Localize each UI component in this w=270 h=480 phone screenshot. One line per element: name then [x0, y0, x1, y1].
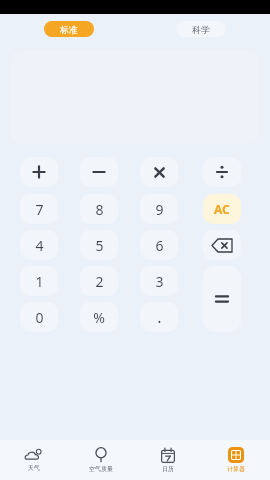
button[interactable]: 8 — [80, 194, 118, 224]
staticText: 空气质量 — [89, 465, 113, 473]
staticText: 0 — [35, 308, 44, 327]
staticText: 日历 — [162, 465, 174, 473]
staticText: 9 — [155, 200, 164, 219]
button[interactable]: × — [140, 157, 178, 187]
staticText: 标准 — [60, 24, 78, 35]
button[interactable]: Equals — [203, 266, 241, 332]
staticText: 2 — [95, 272, 104, 291]
button[interactable]: + — [20, 157, 58, 187]
button[interactable]: . — [140, 302, 178, 332]
button[interactable]: 日历 — [134, 440, 202, 480]
button[interactable]: 空气质量 — [67, 440, 134, 480]
staticText: AC — [214, 201, 230, 217]
staticText: 8 — [95, 200, 104, 219]
staticText: 4 — [35, 236, 44, 255]
button[interactable]: 9 — [140, 194, 178, 224]
button[interactable]: Backspace — [203, 230, 241, 260]
staticText: 5 — [95, 236, 104, 255]
button[interactable]: 计算器 — [202, 440, 270, 480]
staticText: 7 — [35, 200, 44, 219]
staticText: . — [157, 306, 162, 328]
button[interactable]: − — [80, 157, 118, 187]
staticText: 天气 — [28, 464, 40, 472]
button[interactable]: 5 — [80, 230, 118, 260]
staticText: 科学 — [192, 24, 210, 35]
button[interactable]: 1 — [20, 266, 58, 296]
button[interactable]: 科学 — [176, 21, 226, 37]
button[interactable]: 6 — [140, 230, 178, 260]
button[interactable]: 0 — [20, 302, 58, 332]
staticText: 6 — [155, 236, 164, 255]
staticText: % — [93, 308, 105, 327]
button[interactable]: ÷ — [203, 157, 241, 187]
button[interactable]: 天气 — [0, 440, 67, 480]
button[interactable]: AC — [203, 194, 241, 224]
button[interactable]: 4 — [20, 230, 58, 260]
button[interactable]: % — [80, 302, 118, 332]
staticText: 3 — [155, 272, 164, 291]
staticText: 计算器 — [227, 465, 245, 473]
button[interactable]: 3 — [140, 266, 178, 296]
button[interactable]: 2 — [80, 266, 118, 296]
button[interactable]: 标准 — [44, 21, 94, 37]
staticText: 1 — [35, 272, 44, 291]
button[interactable]: 7 — [20, 194, 58, 224]
